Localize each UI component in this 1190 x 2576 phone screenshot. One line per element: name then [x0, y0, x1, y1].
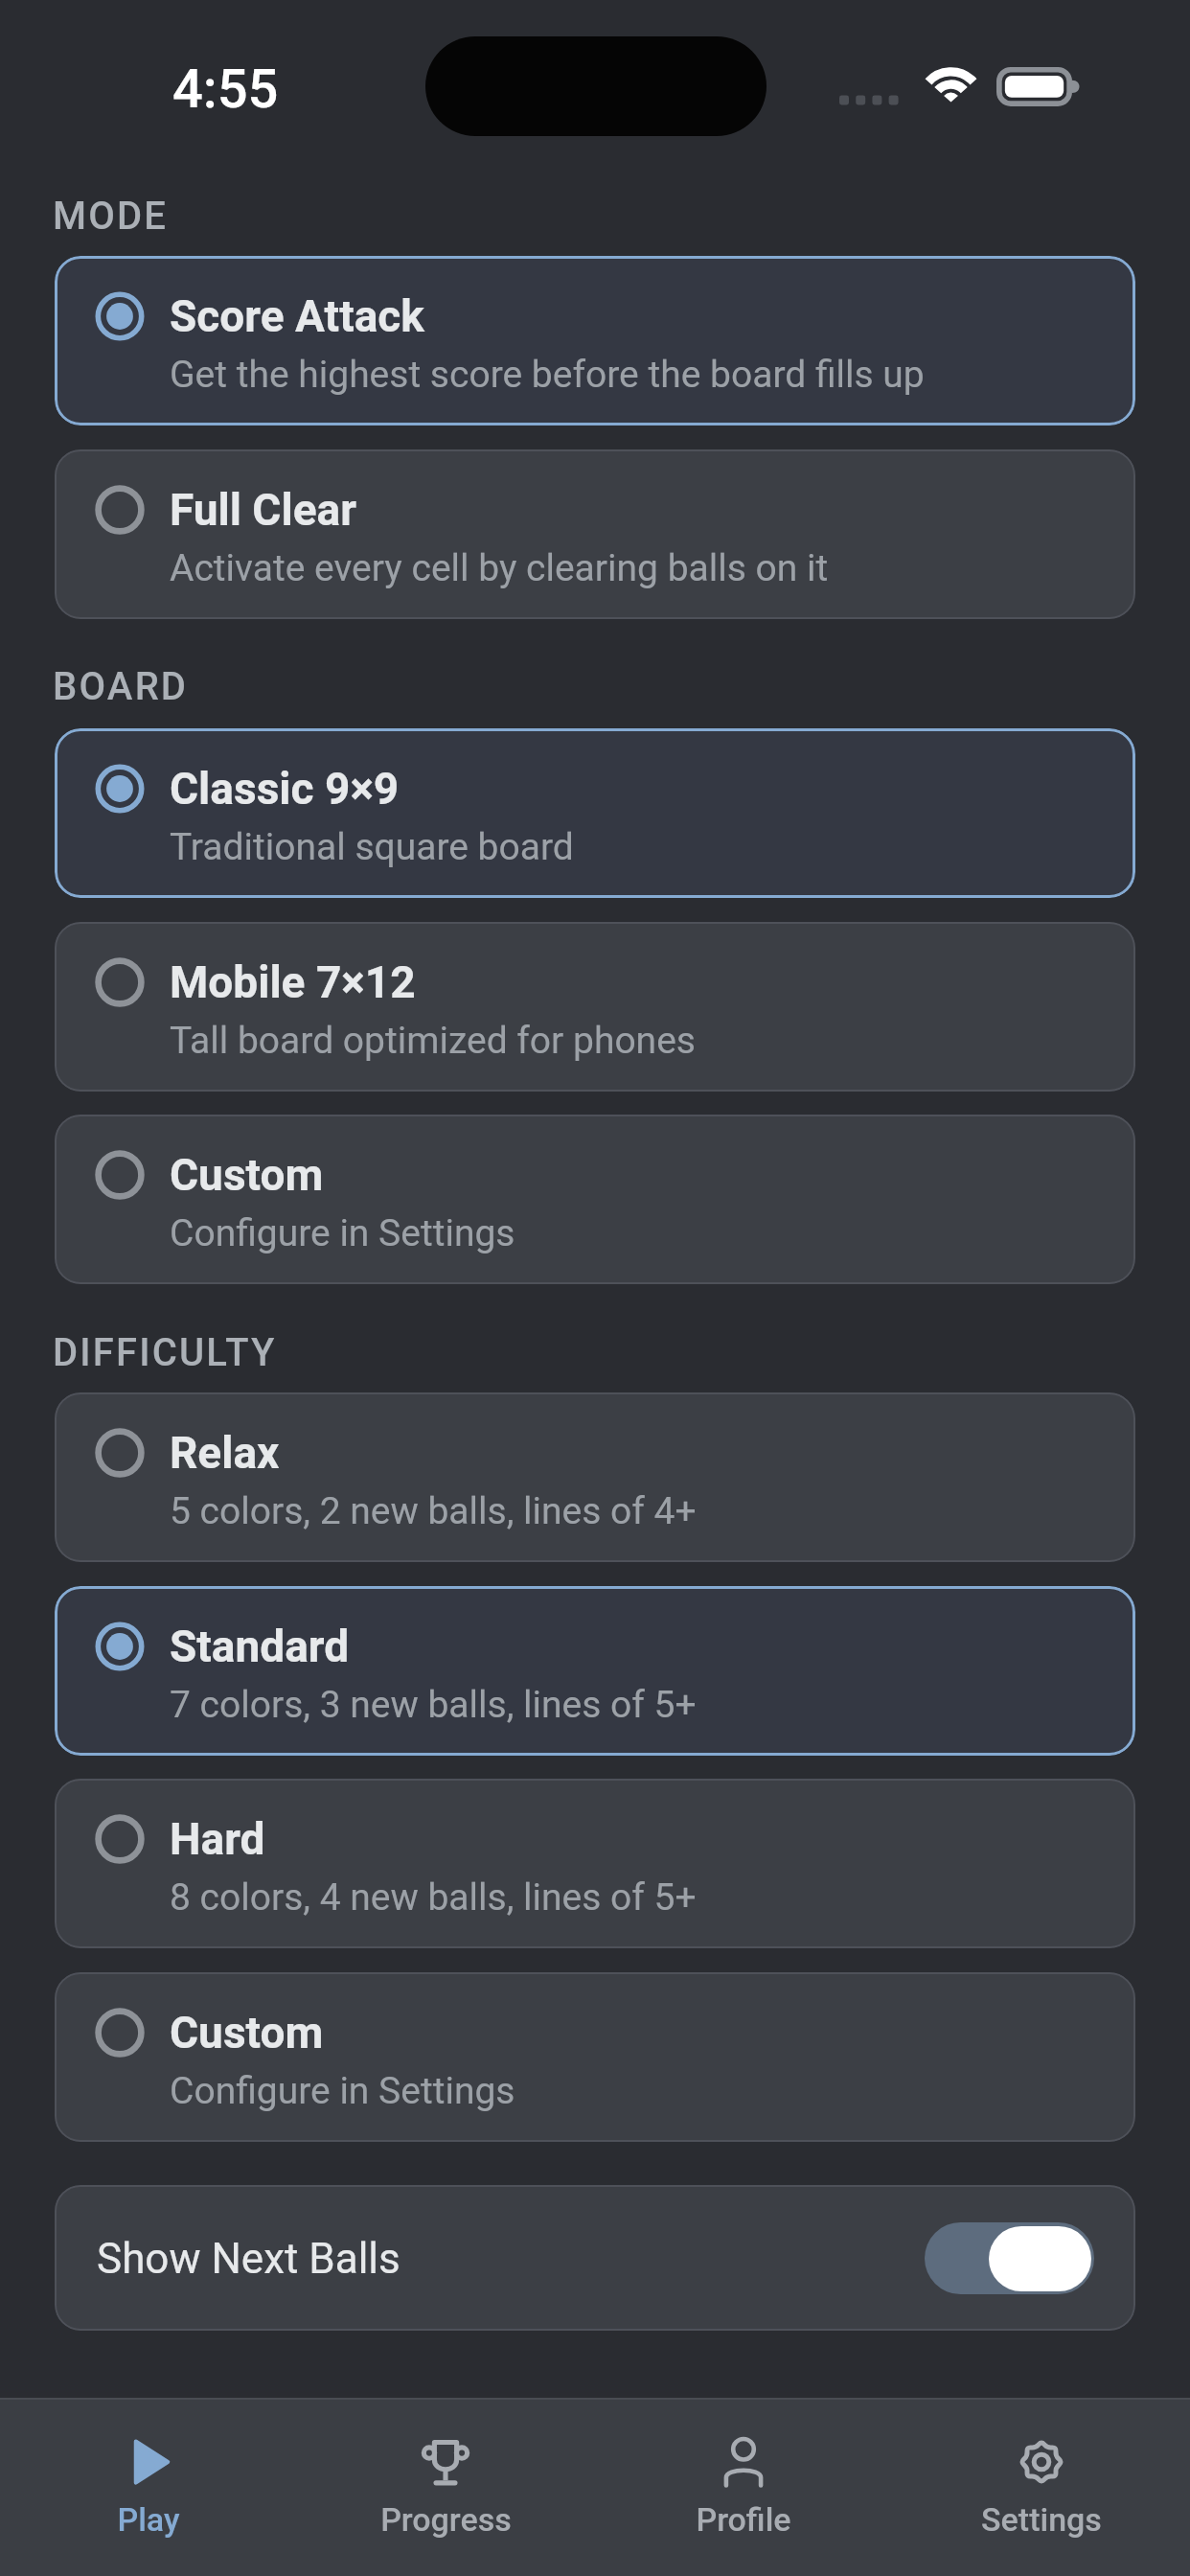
button[interactable]: Classic 9×9	[55, 728, 1135, 898]
staticText: Hard	[170, 1813, 265, 1865]
staticText: Profile	[696, 2500, 791, 2539]
button[interactable]: Progress	[297, 2400, 594, 2576]
staticText: Configure in Settings	[170, 1211, 515, 1255]
staticText: Tall board optimized for phones	[170, 1019, 696, 1063]
staticText: Classic 9×9	[170, 763, 400, 815]
staticText: Traditional square board	[170, 825, 574, 869]
staticText: Show Next Balls	[97, 2234, 400, 2284]
button[interactable]: Settings	[892, 2400, 1190, 2576]
staticText: DIFFICULTY	[53, 1330, 277, 1375]
staticText: Mobile 7×12	[170, 956, 416, 1008]
staticText: Configure in Settings	[170, 2069, 515, 2113]
button[interactable]: Custom	[55, 1972, 1135, 2142]
staticText: Custom	[170, 1149, 324, 1201]
button[interactable]: Custom	[55, 1115, 1135, 1284]
button[interactable]: Score Attack	[55, 256, 1135, 425]
staticText: Play	[117, 2500, 180, 2539]
staticText: Custom	[170, 2007, 324, 2058]
staticText: BOARD	[53, 664, 189, 709]
staticText: Get the highest score before the board f…	[170, 353, 925, 397]
staticText: 7 colors, 3 new balls, lines of 5+	[170, 1683, 697, 1727]
staticText: 8 colors, 4 new balls, lines of 5+	[170, 1875, 697, 1920]
staticText: 4:55	[172, 57, 279, 121]
staticText: Full Clear	[170, 484, 356, 536]
staticText: Relax	[170, 1427, 280, 1479]
button[interactable]: Full Clear	[55, 449, 1135, 619]
staticText: Score Attack	[170, 290, 424, 342]
button[interactable]: Standard	[55, 1586, 1135, 1756]
staticText: 5 colors, 2 new balls, lines of 4+	[170, 1489, 697, 1533]
button[interactable]: Profile	[594, 2400, 892, 2576]
button[interactable]: Play	[0, 2400, 297, 2576]
staticText: Standard	[170, 1621, 350, 1672]
staticText: MODE	[53, 194, 169, 239]
button[interactable]: Show Next Balls	[55, 2185, 1135, 2331]
button[interactable]: Toggle Show Next Balls	[925, 2222, 1094, 2294]
button[interactable]: Hard	[55, 1779, 1135, 1948]
button[interactable]: Relax	[55, 1392, 1135, 1562]
staticText: Progress	[380, 2500, 512, 2539]
staticText: Activate every cell by clearing balls on…	[170, 546, 829, 590]
staticText: Settings	[981, 2500, 1102, 2539]
button[interactable]: Mobile 7×12	[55, 922, 1135, 1092]
